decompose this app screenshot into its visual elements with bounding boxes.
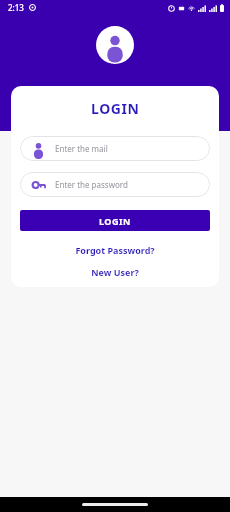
staticText: Enter the password xyxy=(55,179,128,190)
staticText: LOGIN xyxy=(99,215,131,227)
other: Email xyxy=(31,141,46,156)
other: Password xyxy=(31,177,46,192)
button[interactable]: Forgot Password? xyxy=(67,242,163,258)
button[interactable]: Email xyxy=(20,136,210,161)
staticText: Enter the mail xyxy=(55,143,108,154)
staticText: 2:13 xyxy=(8,2,24,13)
button[interactable]: Password xyxy=(20,172,210,197)
staticText: New User? xyxy=(91,266,139,278)
staticText: LOGIN xyxy=(91,99,140,118)
button[interactable]: LOGIN xyxy=(20,210,210,231)
staticText: Forgot Password? xyxy=(75,244,155,256)
button[interactable]: New User? xyxy=(83,264,147,280)
